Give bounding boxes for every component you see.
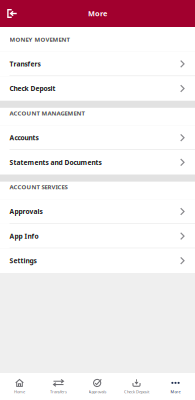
button[interactable]: Sign out: [0, 3, 23, 24]
staticText: Check Deposit: [9, 84, 55, 93]
staticText: Statements and Documents: [9, 158, 101, 167]
button[interactable]: Transfers: [39, 373, 78, 400]
staticText: Home: [14, 389, 25, 394]
button[interactable]: More: [156, 373, 195, 400]
staticText: Approvals: [9, 207, 42, 216]
staticText: App Info: [9, 232, 38, 241]
button[interactable]: Home: [0, 373, 39, 400]
button[interactable]: Accounts: [0, 125, 195, 150]
staticText: Transfers: [50, 389, 67, 394]
button[interactable]: Settings: [0, 248, 195, 273]
staticText: Approvals: [88, 389, 106, 394]
staticText: Settings: [9, 256, 36, 265]
staticText: More: [170, 389, 180, 394]
button[interactable]: Check Deposit: [117, 373, 156, 400]
staticText: MONEY MOVEMENT: [9, 35, 69, 43]
staticText: Check Deposit: [124, 389, 149, 394]
staticText: ACCOUNT SERVICES: [9, 183, 67, 191]
staticText: More: [88, 8, 107, 18]
staticText: Transfers: [9, 59, 40, 68]
button[interactable]: Check Deposit: [0, 76, 195, 101]
staticText: ACCOUNT MANAGEMENT: [9, 109, 84, 117]
button[interactable]: Approvals: [78, 373, 117, 400]
staticText: Accounts: [9, 133, 38, 142]
button[interactable]: App Info: [0, 224, 195, 248]
button[interactable]: Approvals: [0, 199, 195, 224]
button[interactable]: Statements and Documents: [0, 150, 195, 175]
button[interactable]: Transfers: [0, 52, 195, 76]
